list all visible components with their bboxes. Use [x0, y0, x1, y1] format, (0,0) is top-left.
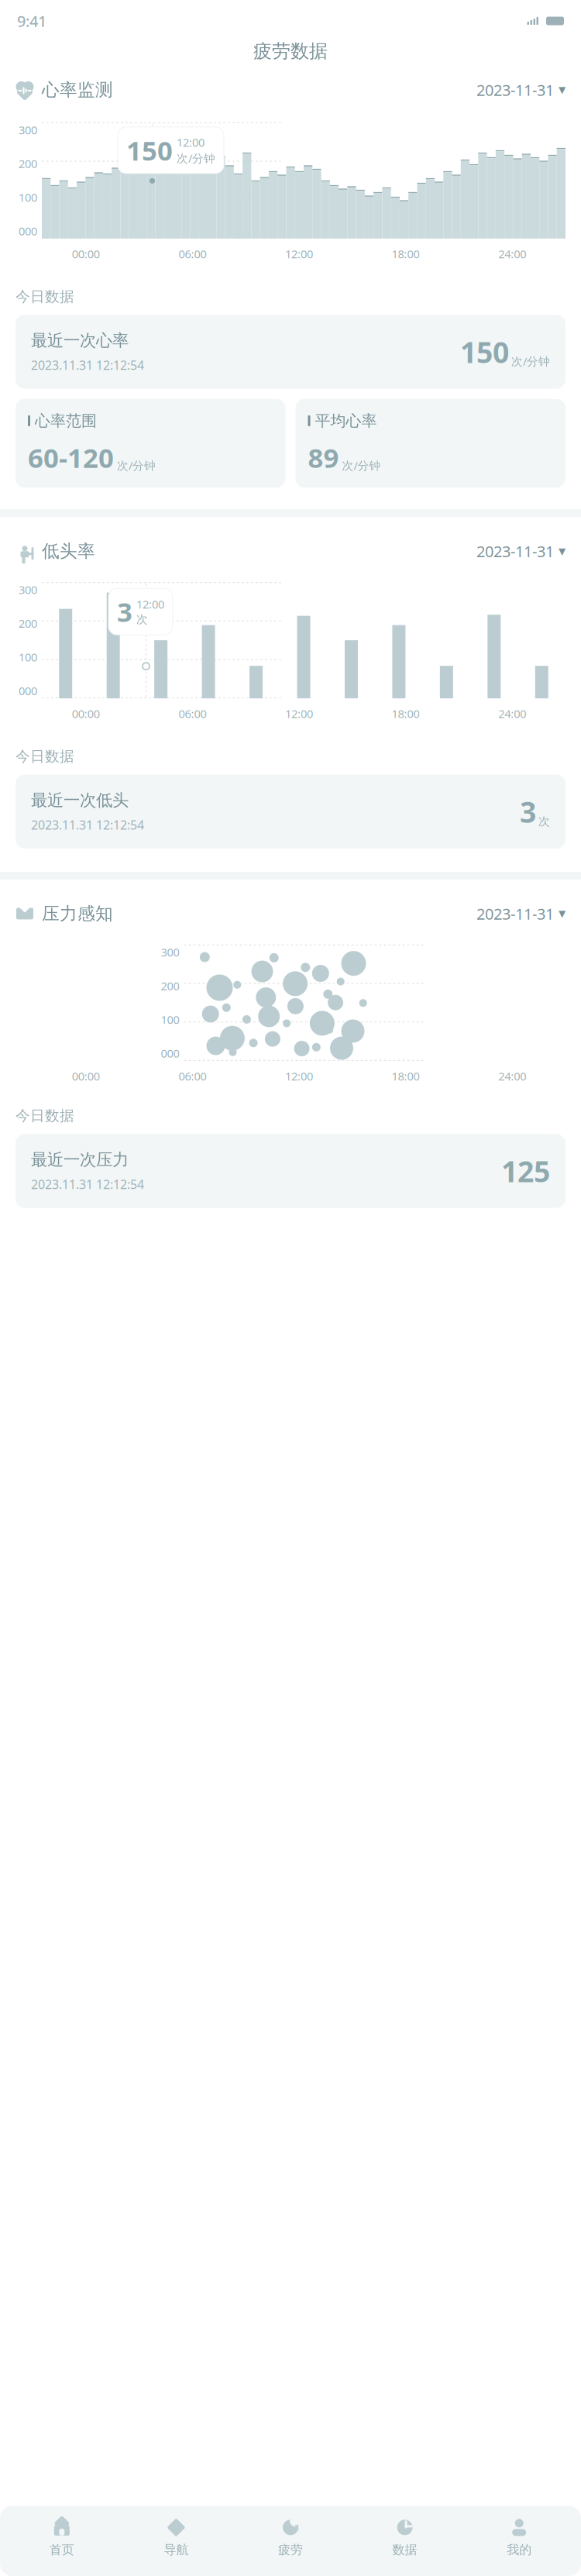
- staticText: 12:00: [285, 706, 313, 721]
- staticText: 300: [19, 122, 37, 137]
- staticText: 200: [19, 156, 37, 171]
- button[interactable]: 2023-11-31: [476, 541, 566, 561]
- staticText: z: [294, 2520, 299, 2533]
- staticText: 000: [161, 1046, 179, 1061]
- staticText: 00:00: [72, 246, 100, 261]
- staticText: 首页: [49, 2542, 74, 2557]
- staticText: 最近一次低头: [31, 790, 129, 810]
- staticText: ▼: [559, 908, 566, 919]
- button[interactable]: 最近一次低头: [15, 775, 566, 849]
- staticText: 次/分钟: [511, 354, 550, 369]
- staticText: 60-120: [28, 440, 114, 475]
- staticText: 最近一次心率: [31, 330, 129, 351]
- staticText: ▼: [559, 85, 566, 95]
- staticText: 导航: [164, 2542, 189, 2557]
- button[interactable]: 首页: [5, 2513, 119, 2562]
- staticText: 压力感知: [42, 903, 113, 924]
- staticText: 平均心率: [315, 411, 377, 430]
- staticText: 12:00: [285, 1069, 313, 1084]
- staticText: 18:00: [392, 706, 420, 721]
- button[interactable]: 2023-11-31: [476, 80, 566, 100]
- staticText: 06:00: [178, 1069, 206, 1084]
- staticText: 2023.11.31 12:12:54: [31, 817, 144, 833]
- staticText: 300: [19, 582, 37, 597]
- staticText: 今日数据: [15, 1107, 74, 1125]
- staticText: 2023.11.31 12:12:54: [31, 1176, 144, 1192]
- button[interactable]: z: [233, 2513, 348, 2562]
- staticText: 18:00: [392, 246, 420, 261]
- staticText: 疲劳: [278, 2542, 303, 2557]
- staticText: 低头率: [42, 540, 95, 562]
- staticText: 2023-11-31: [476, 80, 554, 100]
- staticText: 18:00: [392, 1069, 420, 1084]
- staticText: 次: [136, 613, 148, 626]
- staticText: 次/分钟: [117, 458, 156, 473]
- button[interactable]: 心率范围: [15, 399, 285, 488]
- button[interactable]: 导航: [119, 2513, 233, 2562]
- staticText: 最近一次压力: [31, 1149, 129, 1170]
- button[interactable]: 平均心率: [296, 399, 566, 488]
- staticText: 次: [538, 814, 550, 828]
- button[interactable]: 最近一次心率: [15, 315, 566, 389]
- staticText: 9:41: [17, 11, 46, 31]
- staticText: 次/分钟: [342, 458, 381, 473]
- staticText: 100: [19, 650, 37, 665]
- staticText: 今日数据: [15, 748, 74, 765]
- staticText: 我的: [507, 2542, 532, 2557]
- staticText: 2023-11-31: [476, 903, 554, 924]
- staticText: 2023-11-31: [476, 541, 554, 561]
- staticText: 125: [501, 1152, 550, 1190]
- staticText: 89: [308, 440, 339, 475]
- staticText: 150: [460, 333, 509, 371]
- staticText: 00:00: [72, 706, 100, 721]
- staticText: 300: [161, 945, 179, 960]
- button[interactable]: 数据: [348, 2513, 462, 2562]
- staticText: 100: [161, 1012, 179, 1027]
- staticText: 12:00: [285, 246, 313, 261]
- staticText: 今日数据: [15, 288, 74, 305]
- staticText: 200: [161, 978, 179, 993]
- staticText: 100: [19, 190, 37, 205]
- staticText: 06:00: [178, 246, 206, 261]
- staticText: 24:00: [498, 1069, 526, 1084]
- button[interactable]: 最近一次压力: [15, 1134, 566, 1208]
- staticText: 心率范围: [35, 411, 97, 430]
- staticText: 12:00: [177, 135, 205, 150]
- staticText: 00:00: [72, 1069, 100, 1084]
- staticText: 000: [19, 224, 37, 239]
- staticText: 000: [19, 683, 37, 698]
- staticText: 150: [126, 132, 173, 168]
- staticText: 疲劳数据: [253, 40, 328, 63]
- staticText: 06:00: [178, 706, 206, 721]
- staticText: ▼: [559, 546, 566, 556]
- staticText: 3: [520, 792, 536, 831]
- staticText: 2023.11.31 12:12:54: [31, 357, 144, 373]
- staticText: 24:00: [498, 246, 526, 261]
- staticText: 次/分钟: [177, 151, 215, 166]
- staticText: 数据: [392, 2542, 417, 2557]
- button[interactable]: 我的: [462, 2513, 576, 2562]
- staticText: 24:00: [498, 706, 526, 721]
- staticText: 3: [117, 594, 132, 629]
- staticText: 200: [19, 616, 37, 631]
- staticText: 心率监测: [42, 79, 113, 101]
- button[interactable]: 2023-11-31: [476, 903, 566, 924]
- staticText: 12:00: [136, 597, 164, 612]
